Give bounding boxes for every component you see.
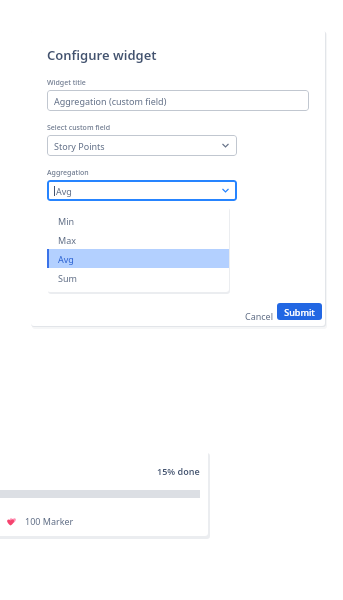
staticText: Widget title xyxy=(47,78,86,88)
button[interactable]: Submit xyxy=(277,303,322,320)
button[interactable]: Cancel xyxy=(241,307,278,325)
staticText: Submit xyxy=(284,306,315,318)
button[interactable]: Sum xyxy=(47,268,229,287)
button[interactable]: Marker emoji xyxy=(0,510,200,532)
button[interactable]: Max xyxy=(47,230,229,249)
button[interactable]: Min xyxy=(47,211,229,230)
staticText: 100 Marker xyxy=(25,515,74,527)
button[interactable]: Aggregation (custom field) xyxy=(47,90,309,111)
staticText: Avg xyxy=(56,185,72,197)
other: Marker emoji xyxy=(6,516,17,527)
staticText: Max xyxy=(58,234,76,246)
staticText: Sum xyxy=(58,272,77,284)
staticText: Select custom field xyxy=(47,123,110,133)
staticText: Aggregation xyxy=(47,168,89,178)
staticText: Min xyxy=(58,215,75,227)
staticText: Avg xyxy=(58,253,74,265)
button[interactable]: Story Points xyxy=(47,135,237,156)
staticText: Configure widget xyxy=(47,46,157,64)
staticText: Aggregation (custom field) xyxy=(54,95,167,107)
button[interactable]: Avg xyxy=(47,249,229,268)
staticText: Story Points xyxy=(54,140,105,152)
button[interactable]: Avg xyxy=(47,180,237,201)
staticText: 15% done xyxy=(157,465,200,477)
